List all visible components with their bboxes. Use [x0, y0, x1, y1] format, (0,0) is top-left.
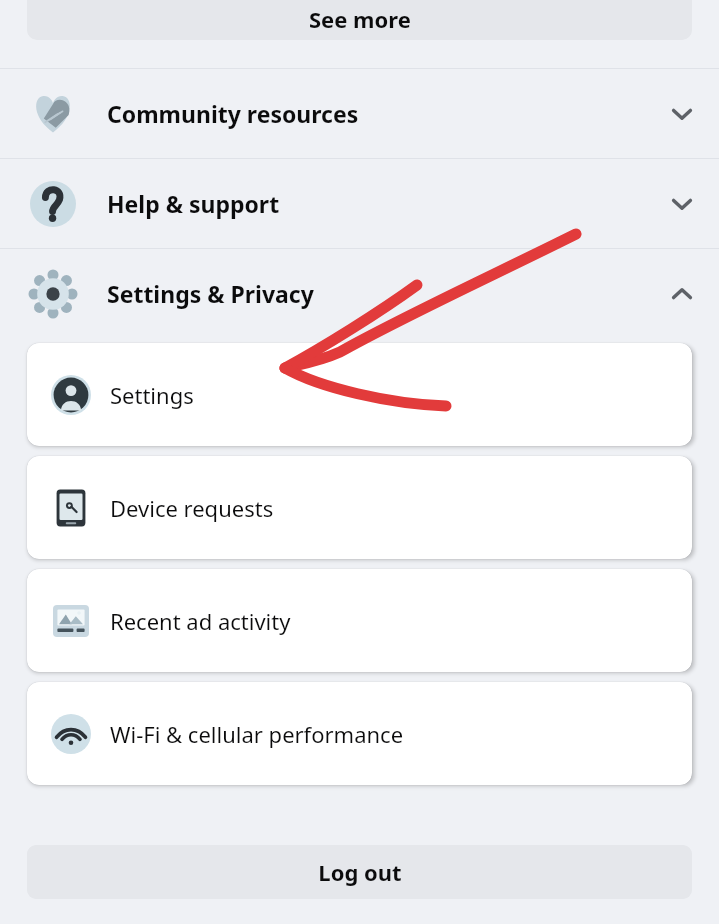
staticText: Settings & Privacy [107, 278, 314, 309]
staticText: Device requests [110, 493, 274, 523]
button[interactable]: Log out [27, 845, 692, 899]
staticText: Log out [318, 857, 402, 887]
staticText: Help & support [107, 188, 280, 219]
button[interactable]: See more [27, 0, 692, 40]
button[interactable]: Settings [27, 343, 692, 446]
button[interactable]: Device requests [27, 456, 692, 559]
button[interactable]: Help & support [0, 159, 719, 248]
staticText: See more [309, 4, 411, 34]
staticText: Recent ad activity [110, 606, 291, 636]
button[interactable]: Wi-Fi & cellular performance [27, 682, 692, 785]
staticText: Community resources [107, 98, 359, 129]
staticText: Settings [110, 380, 194, 410]
staticText: Wi-Fi & cellular performance [110, 719, 404, 749]
button[interactable]: Community resources [0, 69, 719, 158]
button[interactable]: Recent ad activity [27, 569, 692, 672]
button[interactable]: Settings & Privacy [0, 249, 719, 338]
